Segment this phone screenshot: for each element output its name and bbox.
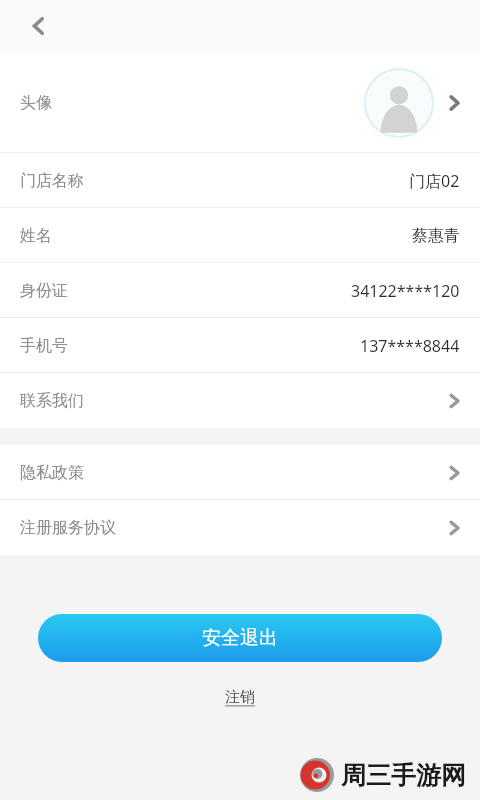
staticText: 手机号 xyxy=(20,336,68,356)
staticText: 门店名称 xyxy=(20,171,84,191)
button[interactable]: 注销 xyxy=(213,684,267,711)
button[interactable]: Back xyxy=(18,5,60,47)
staticText: 身份证 xyxy=(20,281,68,301)
button[interactable]: 注册服务协议 xyxy=(0,500,480,555)
staticText: 注册服务协议 xyxy=(20,518,116,538)
button[interactable]: 门店名称 xyxy=(0,153,480,208)
staticText: 姓名 xyxy=(20,226,52,246)
staticText: 门店02 xyxy=(409,170,460,192)
staticText: 注销 xyxy=(225,688,255,707)
button[interactable]: 隐私政策 xyxy=(0,445,480,500)
staticText: 137****8844 xyxy=(360,335,460,357)
button[interactable]: 联系我们 xyxy=(0,373,480,428)
staticText: 34122****120 xyxy=(351,280,460,302)
staticText: 周三手游网 xyxy=(341,760,466,791)
staticText: 蔡惠青 xyxy=(412,226,460,246)
staticText: 头像 xyxy=(20,93,52,113)
button[interactable]: 手机号 xyxy=(0,318,480,373)
staticText: 联系我们 xyxy=(20,391,84,411)
staticText: 安全退出 xyxy=(202,626,278,650)
button[interactable]: 安全退出 xyxy=(38,614,442,662)
button[interactable]: 头像 xyxy=(0,52,480,153)
button[interactable]: 身份证 xyxy=(0,263,480,318)
button[interactable]: 姓名 xyxy=(0,208,480,263)
staticText: 隐私政策 xyxy=(20,463,84,483)
